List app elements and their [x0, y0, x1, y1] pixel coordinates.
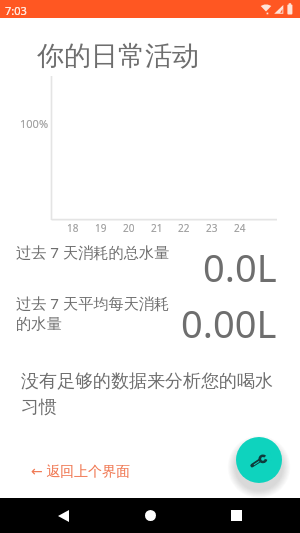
- staticText: 7:03: [5, 3, 27, 18]
- staticText: 100%: [20, 116, 49, 131]
- button[interactable]: Home: [134, 498, 167, 533]
- staticText: 你的日常活动: [37, 39, 199, 73]
- staticText: 21: [151, 221, 163, 235]
- button[interactable]: Recent apps: [220, 498, 253, 533]
- staticText: 20: [123, 221, 135, 235]
- staticText: 0.00L: [181, 297, 277, 341]
- staticText: 22: [178, 221, 190, 235]
- staticText: 0.0L: [203, 241, 277, 285]
- staticText: 18: [67, 221, 79, 235]
- button[interactable]: Back: [47, 498, 80, 533]
- staticText: 没有足够的数据来分析您的喝水习惯: [21, 370, 283, 419]
- button[interactable]: ← 返回上个界面: [26, 457, 136, 484]
- staticText: 23: [206, 221, 218, 235]
- staticText: 19: [95, 221, 107, 235]
- staticText: 过去 7 天消耗的总水量: [16, 242, 194, 263]
- button[interactable]: Settings: [236, 437, 282, 483]
- staticText: ← 返回上个界面: [31, 461, 131, 480]
- staticText: 过去 7 天平均每天消耗 的水量: [16, 293, 194, 333]
- staticText: 24: [234, 221, 246, 235]
